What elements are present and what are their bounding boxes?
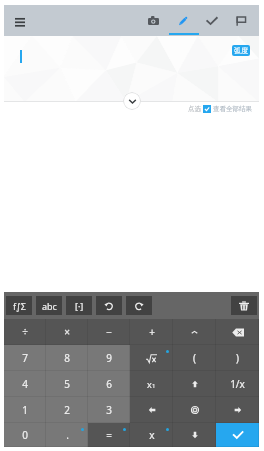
button[interactable]: 3: [88, 397, 130, 423]
button[interactable]: [173, 319, 216, 345]
button[interactable]: x: [130, 423, 173, 447]
staticText: 1: [22, 403, 28, 417]
staticText: 1: [152, 382, 156, 390]
staticText: abc: [42, 300, 57, 312]
button[interactable]: Backspace: [216, 319, 259, 345]
staticText: 9: [106, 351, 112, 365]
staticText: 6: [106, 377, 112, 391]
staticText: 8: [64, 351, 70, 365]
button[interactable]: =: [88, 423, 130, 447]
button[interactable]: abc: [36, 296, 62, 315]
other: Up: [191, 380, 199, 388]
button[interactable]: .: [46, 423, 88, 447]
button[interactable]: Left: [130, 397, 173, 423]
button[interactable]: +: [130, 319, 173, 345]
staticText: 2: [64, 403, 70, 417]
button[interactable]: ): [216, 345, 259, 371]
staticText: (: [193, 351, 196, 365]
button[interactable]: Flag: [229, 9, 252, 32]
button[interactable]: Right: [216, 397, 259, 423]
staticText: 3: [106, 403, 112, 417]
button[interactable]: 6: [88, 371, 130, 397]
button[interactable]: 8: [46, 345, 88, 371]
staticText: ÷: [22, 325, 28, 339]
staticText: ): [236, 351, 239, 365]
button[interactable]: Undo: [96, 296, 122, 315]
staticText: 0: [22, 428, 28, 442]
button[interactable]: Confirm: [200, 9, 223, 32]
staticText: 弧度: [234, 46, 248, 55]
button[interactable]: 9: [88, 345, 130, 371]
button[interactable]: Locate: [173, 397, 216, 423]
staticText: +: [149, 325, 155, 339]
staticText: 点选: [188, 105, 201, 113]
other: Locate: [191, 406, 199, 414]
button[interactable]: ÷: [4, 319, 46, 345]
staticText: 4: [22, 377, 28, 391]
button[interactable]: Delete all: [231, 296, 257, 315]
button[interactable]: Down: [173, 423, 216, 447]
button[interactable]: Draw: [171, 9, 194, 32]
staticText: 1/x: [230, 377, 245, 391]
button[interactable]: Done: [216, 423, 259, 447]
button[interactable]: 1: [4, 397, 46, 423]
button[interactable]: [·]: [66, 296, 92, 315]
button[interactable]: 点选: [188, 105, 252, 113]
button[interactable]: 2: [46, 397, 88, 423]
button[interactable]: Redo: [126, 296, 152, 315]
button[interactable]: f∫Σ: [6, 296, 32, 315]
button[interactable]: 1/x: [216, 371, 259, 397]
staticText: x: [149, 428, 155, 442]
staticText: .: [66, 428, 69, 442]
other: Done: [232, 429, 244, 441]
button[interactable]: ×: [46, 319, 88, 345]
button[interactable]: 0: [4, 423, 46, 447]
button[interactable]: 弧度: [232, 45, 250, 56]
staticText: −: [106, 325, 112, 339]
staticText: 5: [64, 377, 70, 391]
staticText: x: [147, 378, 152, 390]
button[interactable]: Camera: [142, 9, 165, 32]
button[interactable]: Up: [173, 371, 216, 397]
button[interactable]: −: [88, 319, 130, 345]
button[interactable]: 7: [4, 345, 46, 371]
button[interactable]: Menu: [9, 10, 31, 32]
button[interactable]: Expand: [123, 92, 141, 110]
staticText: ×: [64, 325, 70, 339]
other: Backspace: [232, 328, 244, 337]
other: Left: [148, 406, 156, 414]
other: Down: [191, 431, 199, 439]
other: Right: [234, 406, 242, 414]
button[interactable]: 4: [4, 371, 46, 397]
staticText: 7: [22, 351, 28, 365]
staticText: =: [106, 428, 112, 442]
staticText: [·]: [75, 300, 84, 312]
button[interactable]: [130, 345, 173, 371]
staticText: f∫Σ: [13, 300, 26, 312]
button[interactable]: 5: [46, 371, 88, 397]
button[interactable]: (: [173, 345, 216, 371]
staticText: 查看全部结果: [213, 105, 252, 113]
button[interactable]: x: [130, 371, 173, 397]
